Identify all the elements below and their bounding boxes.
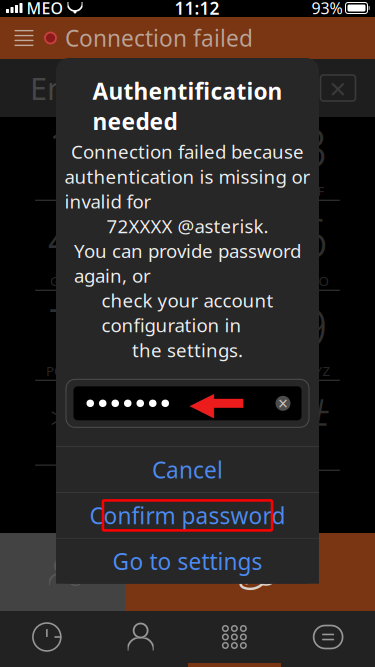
button[interactable]: ∗	[0, 387, 125, 477]
staticText: 7	[47, 291, 77, 362]
staticText: Confirm password	[89, 500, 285, 530]
button[interactable]: Recents	[0, 611, 94, 663]
staticText: MNO	[296, 272, 328, 290]
staticText: WXYZ	[294, 362, 330, 380]
staticText: Connection failed because	[71, 139, 304, 164]
staticText: 0	[166, 381, 196, 452]
staticText: 8	[172, 291, 202, 362]
staticText: 6	[297, 201, 327, 272]
staticText: 5	[172, 201, 202, 272]
button[interactable]: 1	[0, 117, 125, 207]
button[interactable]: Add contact	[0, 533, 125, 611]
button[interactable]: 7	[0, 297, 125, 387]
button[interactable]: Call	[125, 533, 375, 611]
button[interactable]: #	[250, 387, 375, 477]
button[interactable]: 3	[250, 117, 375, 207]
staticText: Connection failed	[65, 23, 253, 53]
staticText: ×	[278, 392, 288, 415]
staticText: 4	[47, 201, 77, 272]
button[interactable]: 0	[125, 387, 250, 477]
staticText: check your account configuration in	[101, 288, 273, 337]
staticText: ◀	[189, 385, 214, 421]
staticText: 1	[47, 111, 77, 182]
staticText: ABC	[174, 182, 200, 200]
staticText: Authentification needed	[92, 76, 282, 136]
staticText: 9	[297, 291, 327, 362]
staticText: TUV	[175, 362, 200, 380]
staticText: DEF	[300, 182, 324, 200]
staticText: Cancel	[152, 455, 223, 485]
staticText: Enter number	[30, 68, 231, 108]
staticText: 3	[297, 111, 327, 182]
button[interactable]: Keypad	[187, 611, 281, 663]
staticText: 72XXXX @asterisk.	[106, 214, 268, 238]
staticText: GHI	[50, 272, 75, 290]
button[interactable]: 9	[250, 297, 375, 387]
staticText: authentication is missing or invalid for	[64, 164, 310, 214]
button[interactable]: 5	[125, 207, 250, 297]
staticText: +	[71, 568, 80, 589]
button[interactable]: Delete	[313, 71, 363, 105]
button[interactable]: 8	[125, 297, 250, 387]
staticText: You can provide password again, or	[74, 238, 301, 288]
button[interactable]: Cancel	[56, 447, 319, 492]
staticText: Go to settings	[112, 546, 262, 576]
staticText: +	[196, 385, 208, 413]
button[interactable]: Contacts	[94, 611, 188, 663]
button[interactable]: 2	[125, 117, 250, 207]
staticText: ×	[329, 68, 346, 107]
button[interactable]: 6	[250, 207, 375, 297]
staticText: 93%	[311, 0, 342, 19]
button[interactable]: Menu	[3, 17, 45, 59]
staticText: ∗	[46, 386, 79, 447]
staticText: MEO	[26, 0, 63, 19]
staticText: ✆	[229, 543, 271, 601]
staticText: 11:12	[174, 0, 219, 19]
staticText: 2	[172, 111, 202, 182]
staticText: #	[295, 381, 329, 452]
button[interactable]: Go to settings	[56, 539, 319, 584]
staticText: the settings.	[132, 337, 243, 362]
button[interactable]: 4	[0, 207, 125, 297]
button[interactable]: Confirm password	[56, 493, 319, 538]
staticText: PQRS	[46, 362, 79, 380]
button[interactable]: Messages	[281, 611, 375, 663]
